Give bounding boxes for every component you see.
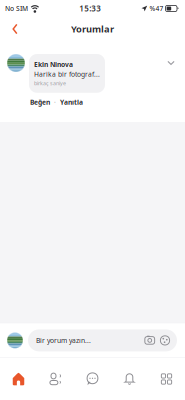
staticText: Yorumlar [71, 23, 114, 35]
staticText: Bir yorum yazın... [36, 336, 91, 345]
staticText: Yanıtla [60, 98, 83, 107]
button[interactable]: Back [4, 18, 26, 40]
button[interactable]: Show more [162, 54, 180, 72]
button[interactable]: Friends [37, 358, 74, 400]
staticText: Ekin Ninova [34, 60, 73, 69]
button[interactable]: Notifications [111, 358, 148, 400]
staticText: Harika bir fotograf... [34, 70, 100, 79]
button[interactable]: Camera [144, 335, 155, 345]
button[interactable]: Messages [74, 358, 111, 400]
staticText: Beğen [30, 98, 50, 107]
button[interactable]: Beğen [30, 98, 50, 107]
staticText: birkaç saniye [34, 80, 66, 87]
button[interactable]: Home [0, 358, 37, 400]
button[interactable]: Stickers [155, 335, 170, 345]
button[interactable]: Yanıtla [60, 98, 83, 107]
button[interactable]: More [148, 358, 185, 400]
staticText: 15:33 [79, 3, 101, 14]
staticText: No SIM [5, 4, 28, 13]
staticText: %47 [149, 4, 163, 13]
staticText: · [54, 98, 56, 107]
